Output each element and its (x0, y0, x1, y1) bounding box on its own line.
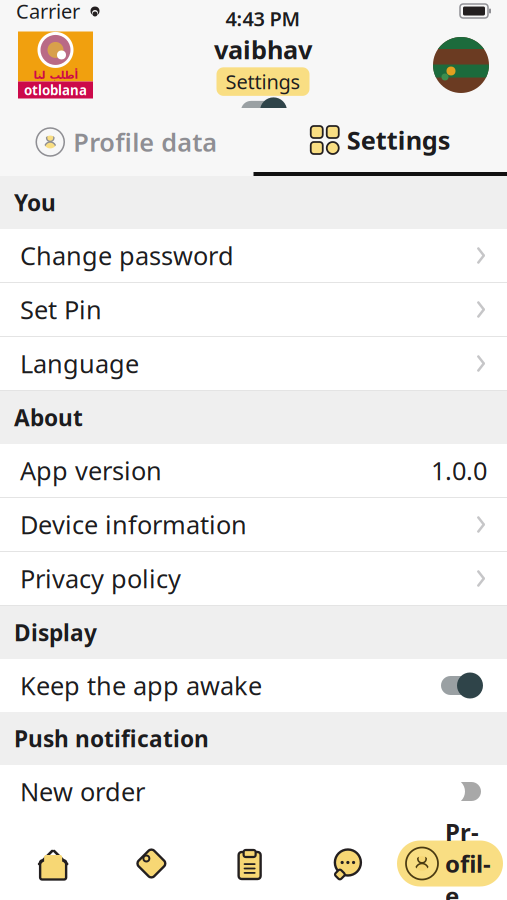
staticText: About (14, 402, 83, 432)
staticText: Carrier (16, 0, 80, 24)
button[interactable]: Privacy policy (0, 552, 507, 606)
staticText: أطلب لنا (33, 69, 78, 81)
button[interactable]: Offers (102, 846, 200, 880)
staticText: Privacy policy (20, 562, 181, 595)
button[interactable]: Device information (0, 498, 507, 552)
staticText: 4:43 PM (225, 5, 300, 32)
staticText: Change password (20, 239, 234, 272)
button[interactable]: Orders (200, 846, 299, 880)
staticText: vaibhav (214, 33, 312, 66)
button[interactable]: Home (4, 846, 102, 880)
staticText: Set Pin (20, 293, 102, 326)
button[interactable]: Language (0, 337, 507, 391)
button[interactable]: Change password (0, 229, 507, 283)
button[interactable]: Keep the app awake (435, 670, 487, 700)
button[interactable]: Profile (397, 840, 503, 886)
staticText: Profile (445, 816, 491, 900)
button[interactable]: Profile data (0, 108, 253, 176)
staticText: Push notification (14, 723, 209, 753)
button[interactable]: Set Pin (0, 283, 507, 337)
button[interactable]: Chat (299, 846, 397, 880)
staticText: otloblana (24, 81, 87, 99)
staticText: App version (20, 454, 162, 487)
button[interactable]: New order (435, 776, 487, 806)
staticText: Language (20, 347, 139, 380)
staticText: Device information (20, 508, 247, 541)
staticText: You (14, 187, 56, 217)
staticText: Profile data (73, 125, 217, 159)
staticText: 1.0.0 (431, 454, 487, 487)
button[interactable]: Settings (253, 108, 507, 176)
staticText: Keep the app awake (20, 669, 262, 702)
staticText: Settings (347, 123, 451, 157)
staticText: New order (20, 775, 145, 808)
staticText: Display (14, 617, 97, 647)
staticText: Settings (225, 68, 300, 95)
